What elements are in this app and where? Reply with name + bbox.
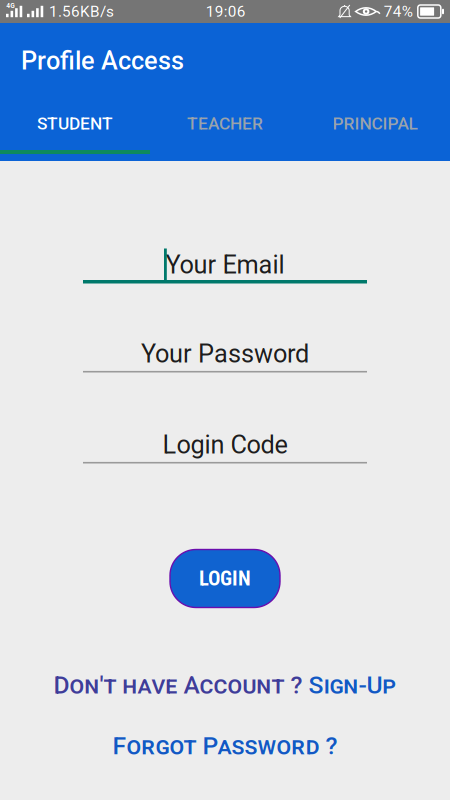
staticText: 1.56KB/s <box>49 2 114 20</box>
staticText: Login Code <box>162 430 287 460</box>
staticText: Your Password <box>141 339 309 369</box>
button[interactable]: PRINCIPAL <box>300 105 450 161</box>
staticText: STUDENT <box>37 113 113 134</box>
staticText: Profile Access <box>21 46 184 76</box>
button[interactable]: Don't have Account ? <box>53 670 396 699</box>
staticText: PRINCIPAL <box>332 113 417 134</box>
staticText: 19:06 <box>206 2 246 20</box>
staticText: TEACHER <box>187 113 263 134</box>
staticText: 4G <box>6 2 15 10</box>
button[interactable]: Forgot Password ? <box>112 731 337 760</box>
button[interactable]: TEACHER <box>150 105 300 161</box>
staticText: LOGIN <box>199 566 251 591</box>
staticText: Don't have Account ? <box>53 670 308 699</box>
staticText: 74% <box>384 2 413 20</box>
button[interactable]: STUDENT <box>0 105 150 161</box>
button[interactable]: LOGIN <box>170 549 280 607</box>
staticText: Your Email <box>165 250 284 280</box>
staticText: Sign-Up <box>308 670 396 699</box>
staticText: Forgot Password ? <box>112 731 337 760</box>
